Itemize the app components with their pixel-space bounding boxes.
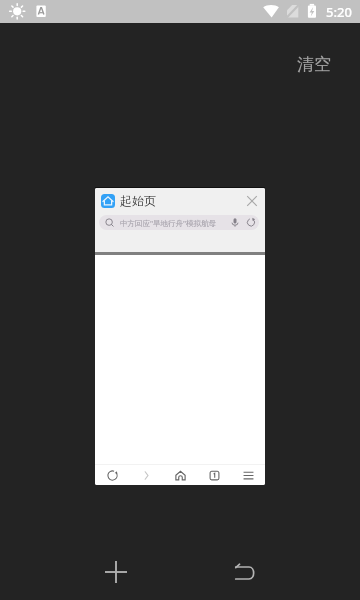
button[interactable]: Forward	[129, 465, 163, 485]
button[interactable]: Clear all	[290, 51, 338, 77]
button[interactable]: Close tab	[244, 193, 260, 209]
button[interactable]: Menu	[231, 465, 265, 485]
staticText: 5:20	[326, 3, 352, 21]
button[interactable]: Search	[99, 215, 259, 230]
button[interactable]: Tabs	[197, 465, 231, 485]
staticText: 起始页	[120, 193, 156, 208]
staticText: 清空	[297, 54, 331, 75]
button[interactable]: Refresh	[95, 465, 129, 485]
button[interactable]: Back	[222, 550, 266, 594]
button[interactable]: Add	[94, 550, 138, 594]
button[interactable]: Home	[163, 465, 197, 485]
button[interactable]: 起始页	[95, 188, 265, 485]
staticText: 中方回应"旱地行舟"模拟航母	[120, 218, 217, 228]
